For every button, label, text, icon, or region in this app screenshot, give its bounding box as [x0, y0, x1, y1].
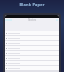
staticText: Notes [28, 18, 37, 22]
button[interactable] [5, 51, 59, 56]
button[interactable] [5, 31, 59, 36]
button[interactable] [5, 66, 59, 71]
staticText: Blank Paper [0, 2, 64, 7]
button[interactable] [5, 46, 59, 51]
button[interactable] [5, 41, 59, 46]
button[interactable] [5, 36, 59, 41]
button[interactable] [5, 56, 59, 61]
button[interactable] [5, 61, 59, 66]
